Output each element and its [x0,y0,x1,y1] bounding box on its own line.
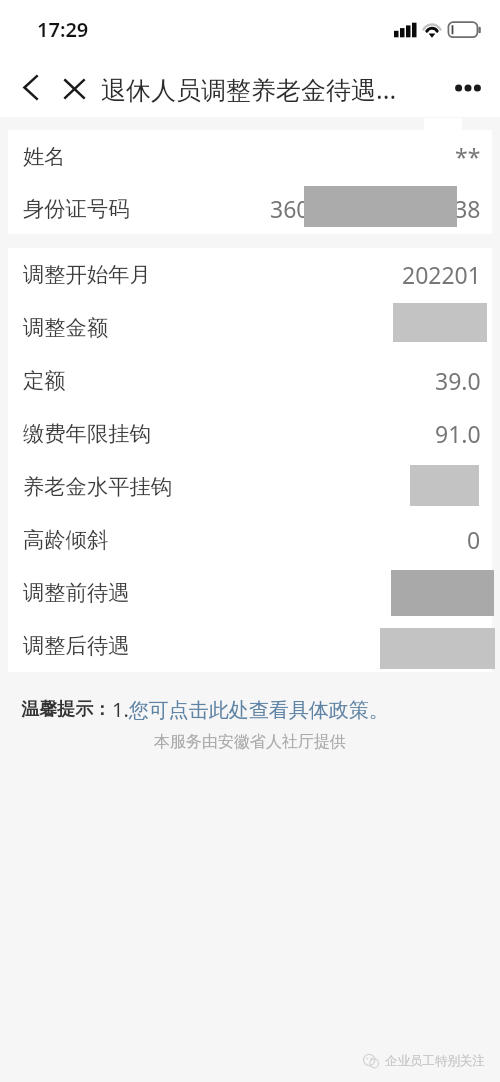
button[interactable]: 身份证号码 [8,182,492,234]
staticText: 0 [467,524,481,555]
staticText: 91.0 [435,418,481,449]
staticText: 调整开始年月 [23,261,151,288]
staticText: 退休人员调整养老金待遇... [101,72,397,106]
staticText: 1.您可点击此处查看具体政策。 [112,696,389,723]
staticText: 身份证号码 [23,195,130,222]
staticText: 3601231990010138 [270,193,481,224]
staticText: ** [455,141,481,172]
staticText: 姓名 [23,143,66,170]
staticText: 202201 [402,259,481,290]
staticText: 调整前待遇 [23,579,130,606]
staticText: 温馨提示： [21,698,111,721]
staticText: 本服务由安徽省人社厅提供 [0,732,500,752]
button[interactable]: 养老金水平挂钩 [8,460,492,513]
staticText: 调整后待遇 [23,632,130,659]
button[interactable]: 高龄倾斜 [8,513,492,566]
button[interactable]: 缴费年限挂钩 [8,407,492,460]
staticText: 缴费年限挂钩 [23,420,151,447]
button[interactable]: 姓名 [8,130,492,182]
button[interactable]: 关闭 [57,72,91,106]
staticText: 定额 [23,367,66,394]
staticText: 养老金水平挂钩 [23,473,173,500]
button[interactable]: 返回 [13,70,47,104]
staticText: 17:29 [37,16,89,43]
button[interactable]: 调整后待遇 [8,619,492,672]
staticText: 39.0 [435,365,481,396]
staticText: 高龄倾斜 [23,526,109,553]
staticText: 调整金额 [23,314,109,341]
button[interactable]: 调整开始年月 [8,248,492,301]
button[interactable]: 调整金额 [8,301,492,354]
button[interactable]: 定额 [8,354,492,407]
staticText: 企业员工特别关注 [385,1053,485,1069]
button[interactable]: 更多 [446,66,490,110]
button[interactable]: 调整前待遇 [8,566,492,619]
button[interactable]: 1.您可点击此处查看具体政策。 [112,696,389,723]
